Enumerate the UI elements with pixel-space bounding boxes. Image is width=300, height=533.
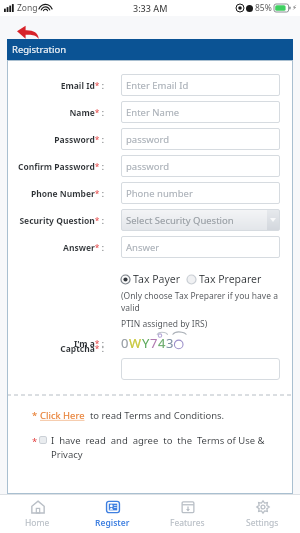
button[interactable]: Tax Payer bbox=[121, 272, 181, 286]
button[interactable]: Register bbox=[75, 495, 150, 533]
staticText: Email Id* : bbox=[7, 80, 104, 92]
staticText: (Only choose Tax Preparer if you have a … bbox=[121, 290, 293, 314]
staticText: Captcha* : bbox=[7, 343, 104, 355]
staticText: I have read and agree to the Terms of Us… bbox=[51, 434, 291, 461]
staticText: 7 bbox=[150, 334, 158, 352]
staticText: * bbox=[32, 409, 40, 422]
staticText: Phone number bbox=[126, 187, 193, 200]
staticText: Features bbox=[170, 517, 205, 529]
button[interactable]: * bbox=[32, 434, 291, 461]
staticText: Zong bbox=[17, 2, 38, 14]
staticText: Enter Name bbox=[126, 106, 180, 119]
button[interactable]: Enter Name bbox=[121, 101, 280, 123]
button[interactable]: Tax Preparer bbox=[187, 272, 262, 286]
staticText: W bbox=[129, 334, 142, 352]
staticText: 3 bbox=[166, 334, 174, 352]
staticText: 3:33 AM bbox=[133, 2, 168, 14]
button[interactable]: Answer bbox=[121, 236, 280, 258]
staticText: Security Question* : bbox=[7, 215, 104, 227]
staticText: Home bbox=[25, 517, 50, 529]
staticText: Click Here bbox=[40, 409, 85, 422]
button[interactable]: Back bbox=[16, 25, 40, 39]
staticText: * bbox=[32, 435, 38, 448]
staticText: to read Terms and Conditions. bbox=[85, 409, 225, 422]
staticText: ⚡ bbox=[292, 4, 297, 12]
staticText: 4 bbox=[158, 334, 166, 352]
staticText: Phone Number* : bbox=[7, 188, 104, 200]
staticText: Name* : bbox=[7, 107, 104, 119]
staticText: Tax Payer bbox=[133, 272, 181, 286]
button[interactable]: Phone number bbox=[121, 182, 280, 204]
staticText: Tax Preparer bbox=[199, 272, 262, 286]
staticText: 0 bbox=[121, 334, 129, 352]
button[interactable]: Enter Email Id bbox=[121, 74, 280, 96]
staticText: Answer bbox=[126, 241, 160, 254]
staticText: I'm a* : bbox=[7, 338, 104, 350]
staticText: Answer* : bbox=[7, 242, 104, 254]
staticText: password bbox=[126, 133, 170, 146]
button[interactable]: Features bbox=[150, 495, 225, 533]
staticText: Password* : bbox=[7, 134, 104, 146]
staticText: Select Security Question bbox=[126, 214, 234, 227]
staticText: Confirm Password* : bbox=[7, 161, 104, 173]
staticText: Registration bbox=[12, 43, 67, 56]
staticText: Register bbox=[95, 517, 130, 529]
staticText: Y bbox=[142, 334, 150, 352]
button[interactable]: password bbox=[121, 128, 280, 150]
button[interactable] bbox=[121, 358, 280, 380]
button[interactable]: Select Security Question bbox=[121, 209, 280, 231]
staticText: password bbox=[126, 160, 170, 173]
staticText: Settings bbox=[246, 517, 279, 529]
button[interactable]: Click Here bbox=[40, 409, 85, 422]
staticText: PTIN assigned by IRS) bbox=[121, 318, 208, 330]
staticText: 85% bbox=[255, 2, 272, 14]
button[interactable]: Home bbox=[0, 495, 75, 533]
button[interactable]: Settings bbox=[225, 495, 300, 533]
staticText: Enter Email Id bbox=[126, 79, 189, 92]
button[interactable]: password bbox=[121, 155, 280, 177]
